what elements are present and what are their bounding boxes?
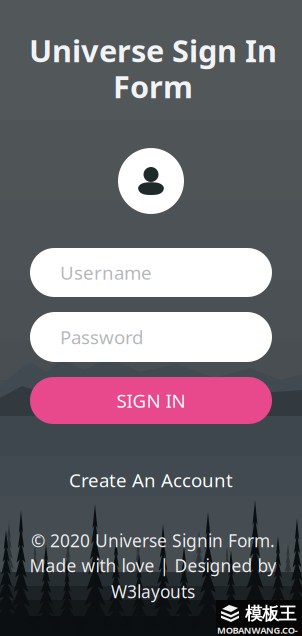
staticText: Universe Sign In bbox=[29, 30, 277, 71]
staticText: Form bbox=[113, 66, 193, 107]
staticText: © 2020 Universe Signin Form. bbox=[31, 529, 275, 552]
button[interactable]: Password bbox=[30, 312, 272, 362]
staticText: Create An Account bbox=[69, 468, 233, 492]
button[interactable]: Username bbox=[30, 248, 272, 297]
staticText: Password bbox=[60, 325, 143, 349]
button[interactable]: SIGN IN bbox=[30, 377, 272, 424]
staticText: Username bbox=[60, 260, 152, 285]
staticText: 模板王 bbox=[245, 603, 296, 624]
staticText: MOBANWANG.COM bbox=[217, 624, 298, 636]
staticText: W3layouts bbox=[111, 580, 195, 603]
button[interactable]: Create An Account bbox=[51, 467, 251, 493]
staticText: Made with love | Designed by bbox=[29, 554, 276, 577]
staticText: SIGN IN bbox=[116, 388, 185, 413]
